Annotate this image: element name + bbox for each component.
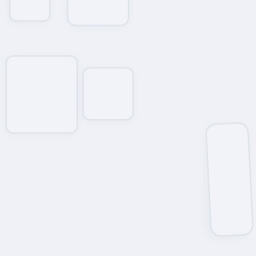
button[interactable]: Tile 3 [6,56,77,133]
button[interactable]: Tile 1 [10,0,50,21]
button[interactable]: Tile 5 [208,123,250,235]
button[interactable]: Tile 4 [83,68,133,120]
button[interactable]: Tile 2 [68,0,129,25]
